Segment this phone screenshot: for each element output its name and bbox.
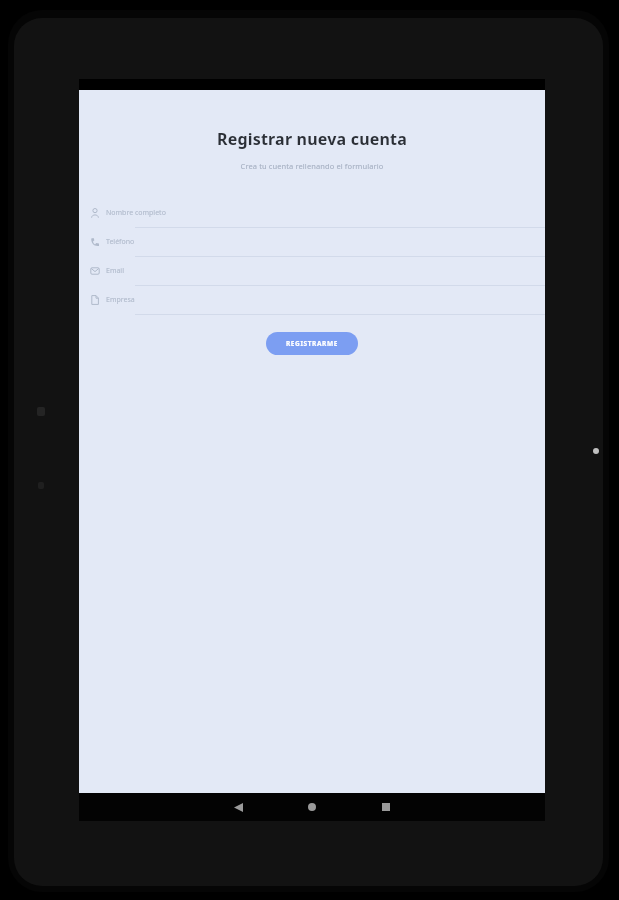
staticText: Teléfono <box>106 237 135 247</box>
staticText: Crea tu cuenta rellenando el formulario <box>79 161 545 171</box>
button[interactable]: Back <box>219 793 257 821</box>
staticText: Empresa <box>106 295 135 305</box>
button[interactable]: Nombre completo <box>79 199 545 227</box>
button[interactable]: Recent apps <box>367 793 405 821</box>
staticText: Email <box>106 266 124 276</box>
staticText: REGISTRARME <box>286 339 338 348</box>
button[interactable]: Teléfono <box>79 228 545 256</box>
button[interactable]: REGISTRARME <box>266 332 358 355</box>
staticText: Registrar nueva cuenta <box>79 128 545 150</box>
button[interactable]: Home <box>293 793 331 821</box>
staticText: Nombre completo <box>106 208 166 218</box>
button[interactable]: Empresa <box>79 286 545 314</box>
